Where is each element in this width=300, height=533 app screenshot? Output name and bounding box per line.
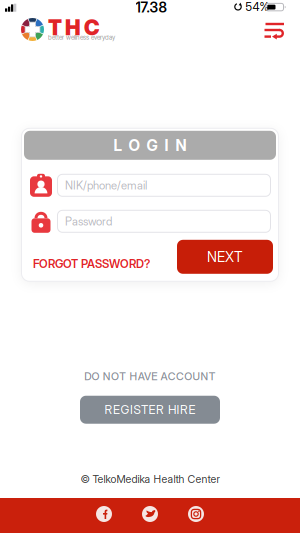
button[interactable] [96, 506, 112, 522]
staticText: 17.38 [135, 0, 166, 16]
button[interactable] [188, 506, 204, 522]
button[interactable]: FORGOT PASSWORD? [33, 257, 150, 274]
button[interactable]: NEXT [177, 240, 273, 274]
button[interactable]: REGISTER HIRE [80, 396, 220, 424]
staticText: DO NOT HAVE ACCOUNT [84, 370, 216, 383]
staticText: LOGIN [113, 136, 186, 155]
staticText: REGISTER HIRE [104, 402, 195, 417]
staticText: NEXT [207, 248, 243, 265]
staticText: NIK/phone/email [65, 178, 147, 192]
button[interactable]: Password [57, 210, 271, 233]
staticText: THC [48, 14, 100, 40]
button[interactable]: NIK/phone/email [57, 174, 271, 197]
staticText: better wellness everyday [48, 33, 115, 41]
staticText: FORGOT PASSWORD? [33, 257, 150, 271]
staticText: © TelkoMedika Health Center [80, 473, 219, 486]
staticText: 54% [245, 0, 269, 14]
button[interactable] [142, 506, 158, 522]
staticText: Password [65, 214, 112, 228]
button[interactable] [264, 18, 286, 42]
